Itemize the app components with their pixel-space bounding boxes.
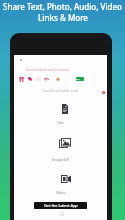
staticText: Text [57, 120, 64, 125]
button[interactable]: Get the Latest App [34, 202, 87, 209]
button[interactable]: Balloon sticker [28, 77, 32, 81]
button[interactable]: Sparkle sticker [36, 77, 41, 81]
button[interactable]: My Ads [76, 77, 84, 81]
staticText: Launch a Lilahh now! [42, 88, 79, 93]
button[interactable]: Menu [20, 59, 22, 61]
staticText: Get the Latest App [44, 203, 78, 208]
staticText: Search Lilahh and Contacts [26, 67, 69, 72]
staticText: Share Text, Photo, Audio, Video [3, 1, 122, 12]
button[interactable]: Flower sticker [56, 77, 60, 81]
staticText: My Ads [76, 77, 84, 81]
staticText: Image/GIF [52, 157, 70, 162]
staticText: Links & More [38, 12, 88, 23]
button[interactable]: Shrine sticker [19, 77, 24, 82]
staticText: Video [56, 190, 66, 195]
button[interactable]: Confetti sticker [44, 77, 49, 81]
